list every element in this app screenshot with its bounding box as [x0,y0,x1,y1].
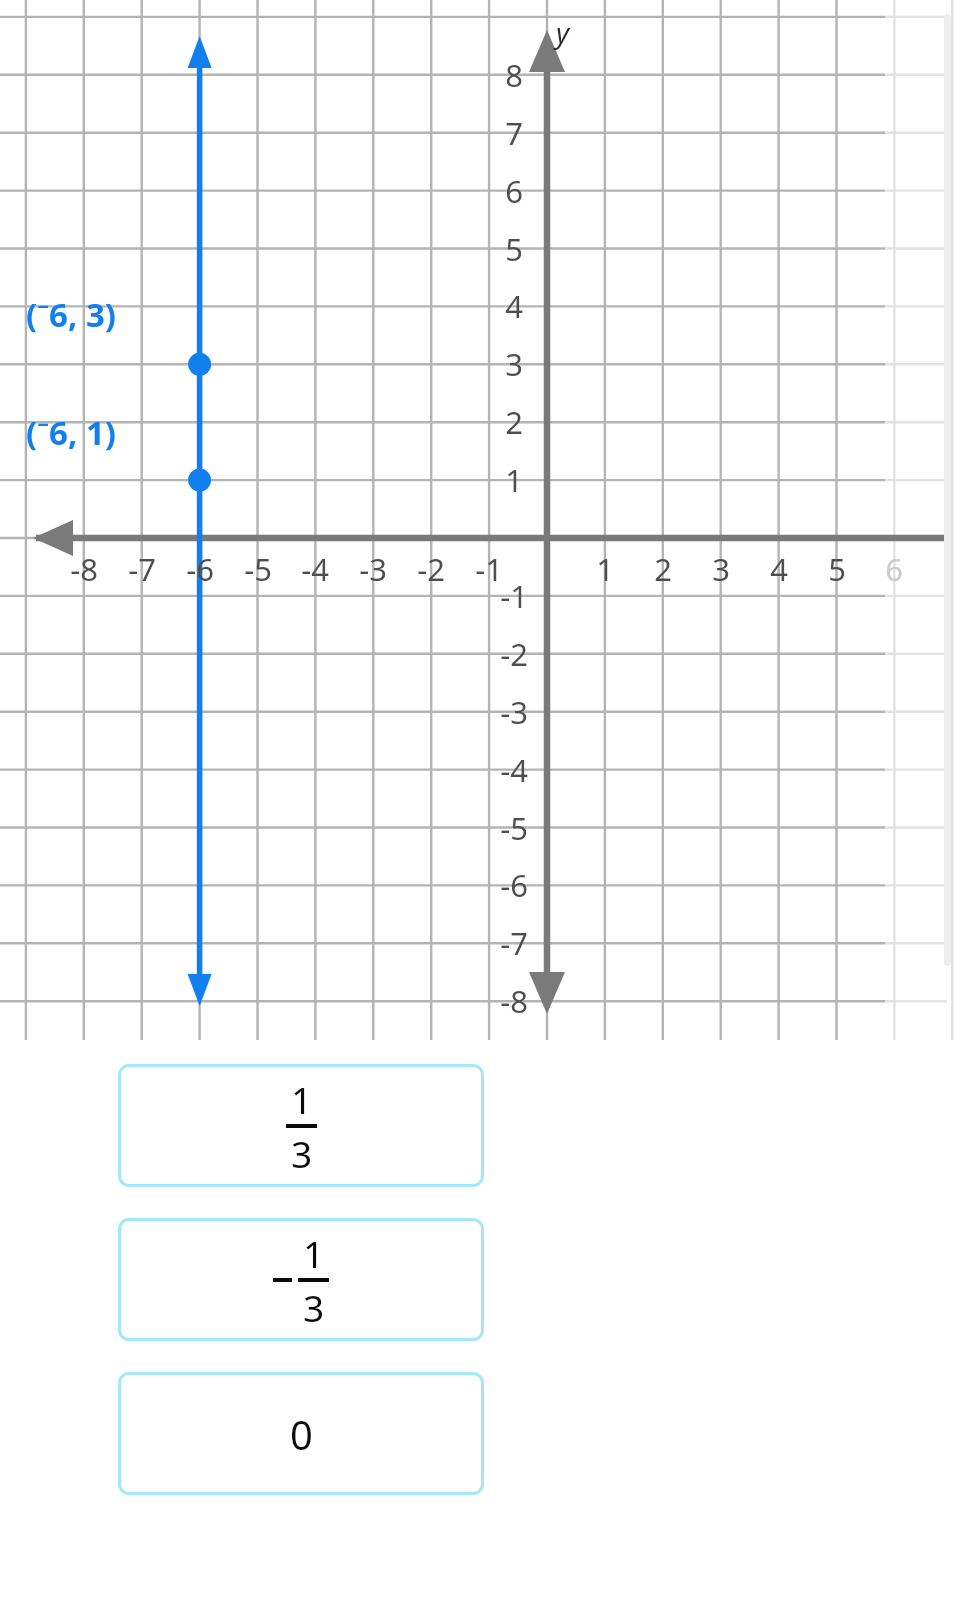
staticText: -5 [500,807,528,849]
staticText: -2 [500,633,528,675]
staticText: (⁻6, 1) [26,410,116,455]
staticText: 3 [505,343,523,385]
staticText: 4 [505,285,523,327]
button[interactable]: 0 [118,1372,484,1495]
staticText: 4 [770,548,788,590]
staticText: -7 [128,548,156,590]
staticText: -4 [301,548,329,590]
staticText: -8 [500,980,528,1022]
staticText: 8 [505,54,523,96]
staticText: y [556,13,570,51]
staticText: -6 [186,548,214,590]
staticText: -2 [417,548,445,590]
staticText: 1 [596,548,614,590]
staticText: -3 [359,548,387,590]
staticText: -5 [244,548,272,590]
staticText: 1 [303,1228,325,1278]
staticText: -8 [70,548,98,590]
staticText: 2 [654,548,672,590]
staticText: (⁻6, 3) [26,292,116,337]
button[interactable]: 1 [118,1064,484,1187]
staticText: 2 [505,401,523,443]
staticText: 3 [303,1282,325,1332]
staticText: -1 [475,548,503,590]
staticText: 3 [712,548,730,590]
staticText: -4 [500,749,528,791]
button[interactable]: 1 [118,1218,484,1341]
staticText: 1 [505,459,523,501]
staticText: 6 [505,170,523,212]
staticText: 5 [505,228,523,270]
staticText: -6 [500,864,528,906]
staticText: -7 [500,922,528,964]
staticText: 7 [505,112,523,154]
staticText: -1 [500,575,528,617]
staticText: 1 [291,1074,313,1124]
staticText: 5 [828,548,846,590]
staticText: 3 [291,1128,313,1178]
staticText: 0 [290,1407,313,1461]
staticText: 6 [885,548,903,590]
staticText: -3 [500,691,528,733]
